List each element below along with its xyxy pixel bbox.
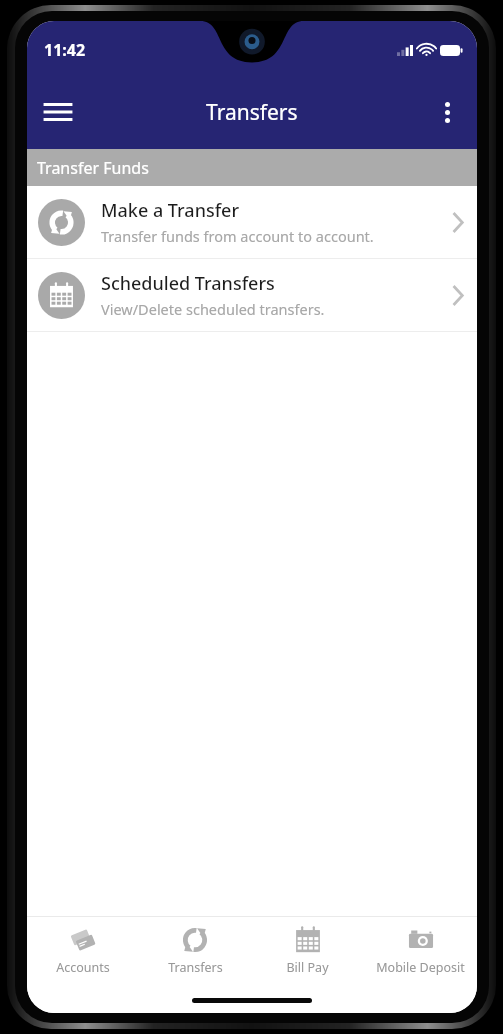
staticText: Make a Transfer [101, 198, 240, 223]
staticText: Transfer funds from account to account. [101, 226, 374, 246]
button[interactable]: Scheduled Transfers [27, 259, 477, 331]
button[interactable]: Make a Transfer [27, 186, 477, 258]
staticText: View/Delete scheduled transfers. [101, 299, 325, 319]
button[interactable]: Open navigation menu [34, 88, 82, 136]
staticText: Accounts [56, 959, 110, 976]
staticText: Bill Pay [286, 959, 329, 976]
staticText: Transfer Funds [37, 157, 149, 179]
staticText: Transfers [168, 959, 223, 976]
button[interactable]: Bill Pay [251, 917, 364, 987]
button[interactable]: Mobile Deposit [364, 917, 477, 987]
staticText: Mobile Deposit [376, 959, 465, 976]
staticText: Scheduled Transfers [101, 271, 275, 296]
staticText: 11:42 [44, 39, 86, 61]
button[interactable]: Transfers [139, 917, 251, 987]
button[interactable]: More options [423, 88, 471, 136]
button[interactable]: Accounts [27, 917, 139, 987]
staticText: Transfers [206, 98, 298, 127]
